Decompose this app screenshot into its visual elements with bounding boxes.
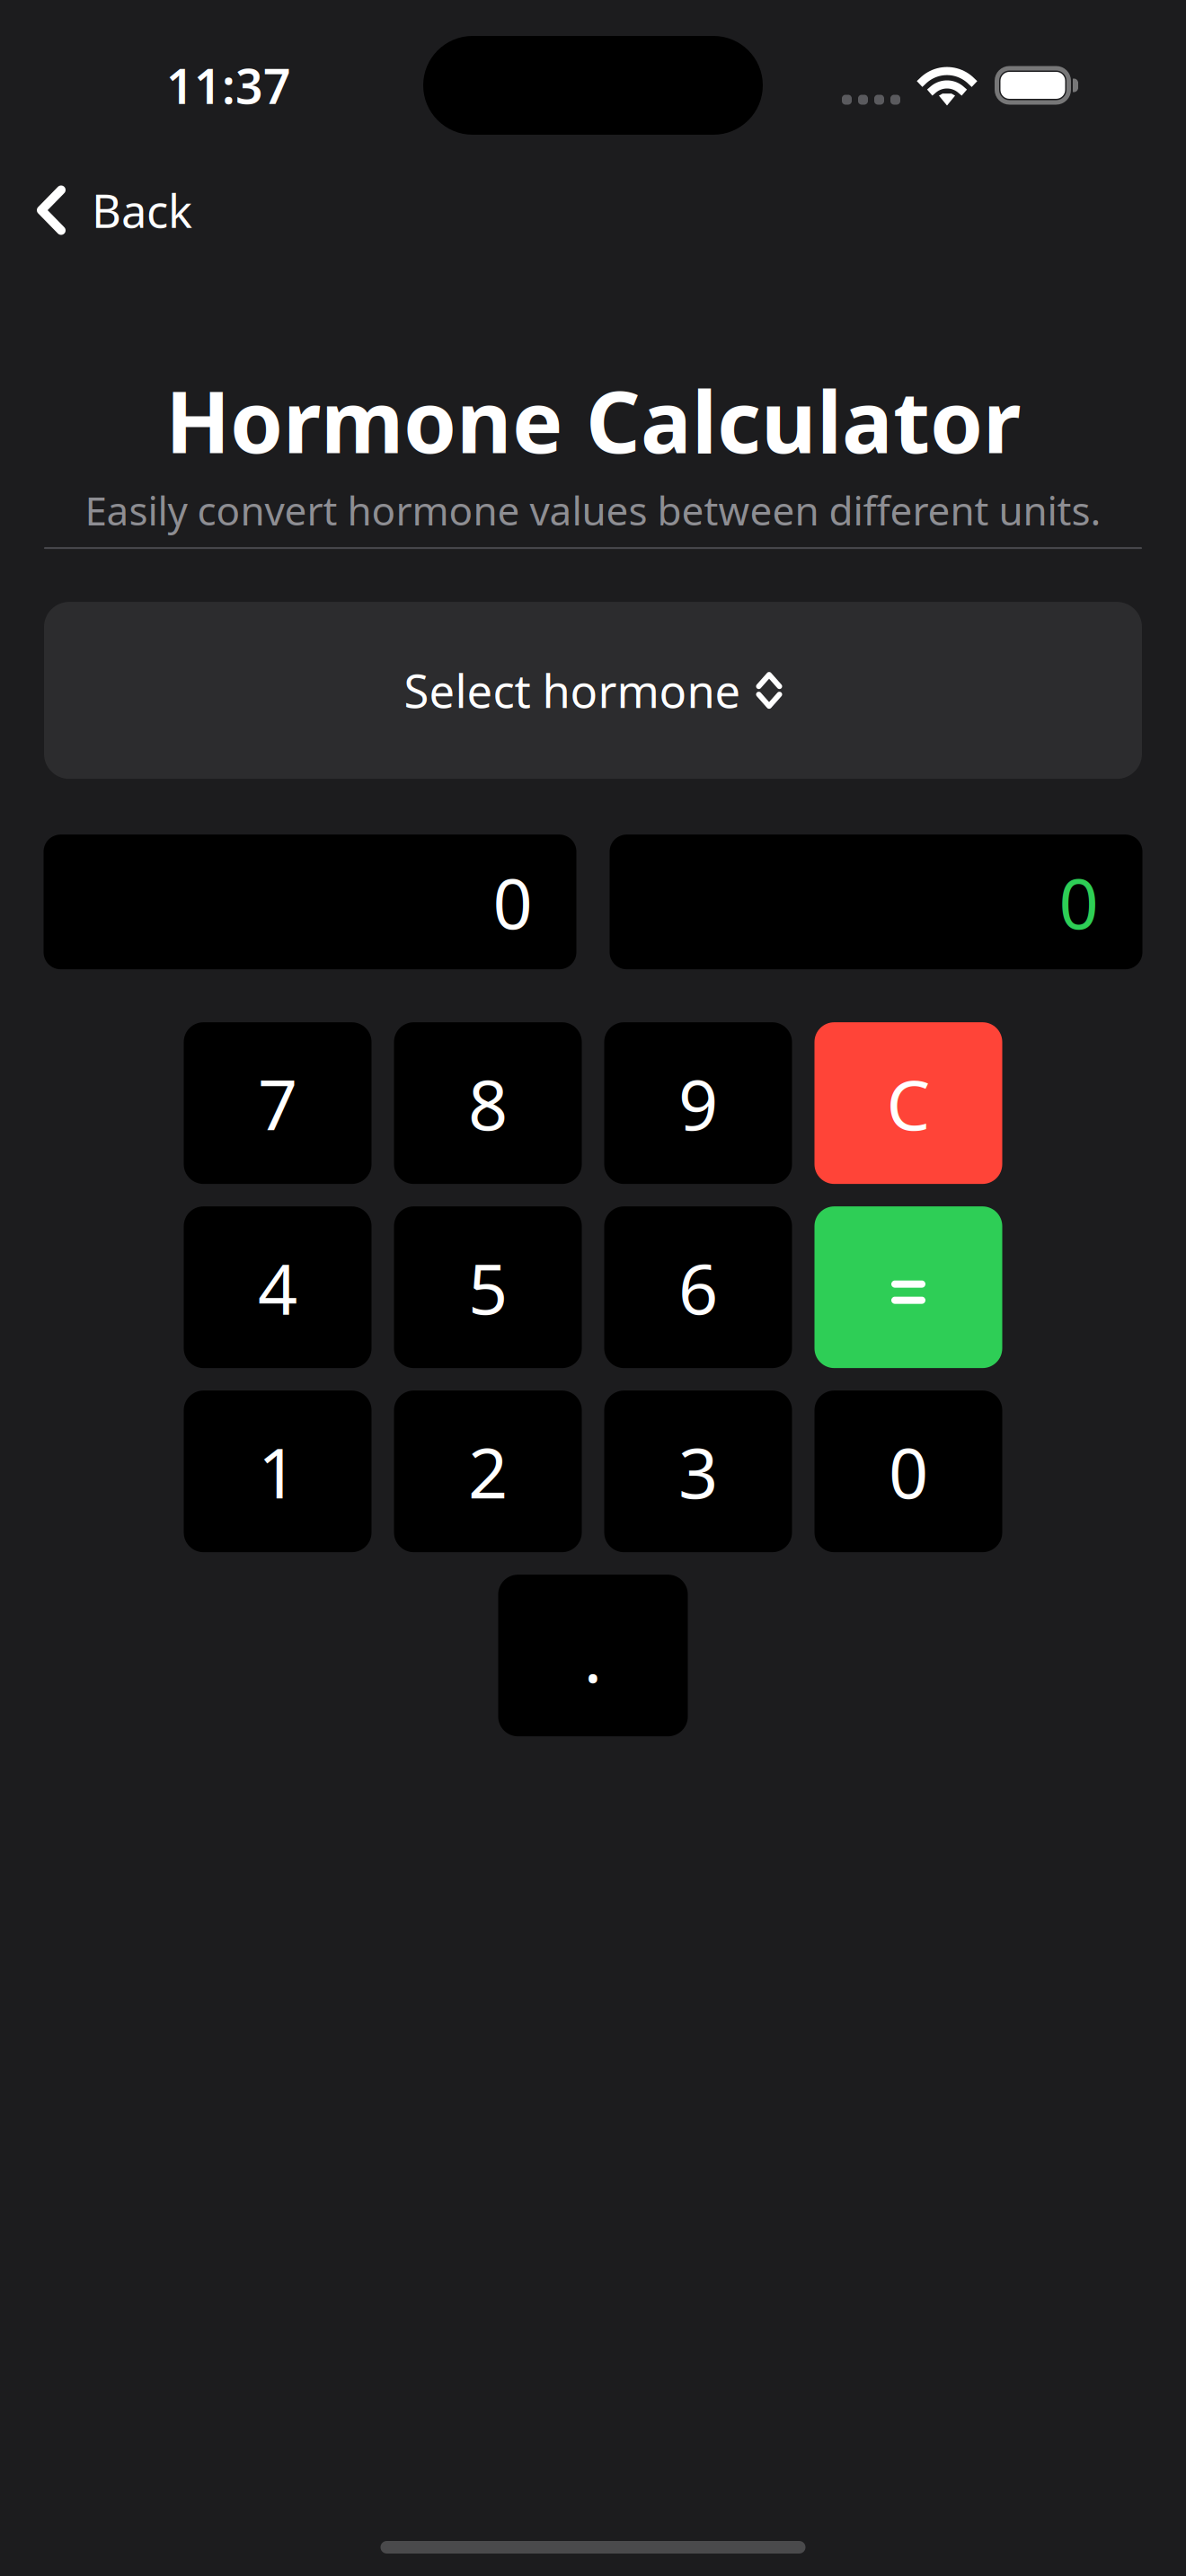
staticText: 0 [889,1425,928,1517]
staticText: 3 [678,1425,718,1517]
staticText: Select hormone [404,660,741,721]
staticText: Back [92,180,192,240]
button[interactable]: 1 [184,1390,372,1552]
button[interactable]: Equals [814,1206,1002,1368]
staticText: 7 [258,1057,297,1149]
button[interactable]: 4 [184,1206,372,1368]
staticText: . [584,1609,602,1702]
staticText: 1 [258,1425,297,1517]
staticText: 5 [468,1241,508,1333]
staticText: 0 [493,856,532,948]
button[interactable]: Back [0,174,214,246]
button[interactable]: 8 [394,1022,582,1184]
staticText: 8 [468,1057,508,1149]
staticText: 9 [678,1057,718,1149]
button[interactable]: 6 [604,1206,792,1368]
button[interactable]: Select hormone [44,602,1142,779]
staticText: Hormone Calculator [165,364,1021,477]
button[interactable]: 2 [394,1390,582,1552]
button[interactable]: 3 [604,1390,792,1552]
staticText: 0 [1059,856,1098,948]
button[interactable]: . [498,1575,688,1736]
button[interactable]: 9 [604,1022,792,1184]
staticText: 6 [678,1241,718,1333]
button[interactable]: 5 [394,1206,582,1368]
button[interactable]: 7 [184,1022,372,1184]
staticText: C [886,1057,930,1149]
staticText: 4 [258,1241,297,1333]
button[interactable]: 0 [814,1390,1002,1552]
staticText: Easily convert hormone values between di… [85,484,1101,536]
staticText: 2 [468,1425,508,1517]
staticText: 11:37 [166,54,291,117]
button[interactable]: C [814,1022,1002,1184]
